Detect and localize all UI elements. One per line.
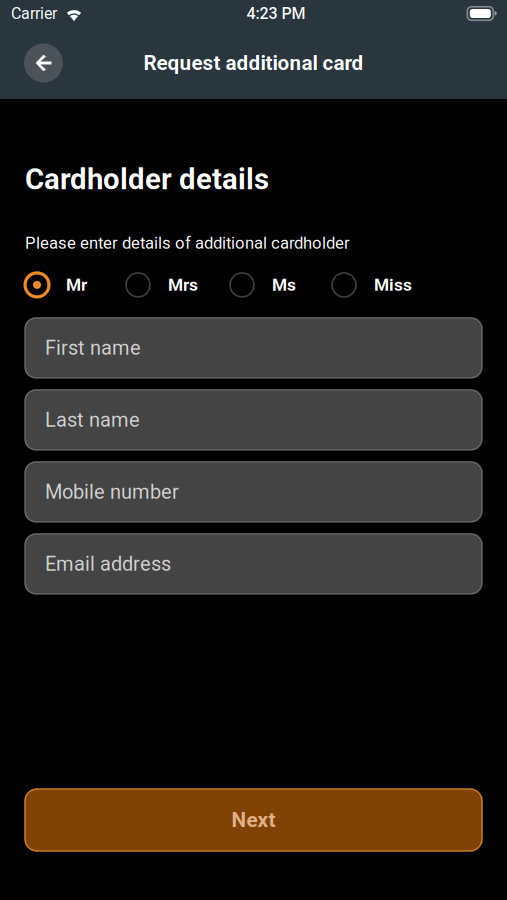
staticText: Please enter details of additional cardh…: [25, 233, 350, 253]
staticText: Email address: [45, 552, 171, 576]
staticText: Cardholder details: [25, 162, 269, 196]
staticText: Next: [231, 808, 275, 832]
staticText: Mr: [66, 275, 87, 295]
staticText: First name: [45, 336, 141, 360]
staticText: Carrier: [11, 4, 57, 23]
staticText: Ms: [272, 275, 296, 295]
staticText: Request additional card: [143, 51, 363, 75]
button[interactable]: Ms: [230, 273, 296, 297]
button[interactable]: Next: [25, 789, 482, 851]
button[interactable]: Last name: [25, 390, 482, 450]
staticText: 4:23 PM: [246, 4, 305, 23]
staticText: Mrs: [168, 275, 198, 295]
button[interactable]: Miss: [332, 273, 412, 297]
staticText: Miss: [374, 275, 412, 295]
button[interactable]: Mr: [25, 273, 87, 297]
button[interactable]: Back: [24, 43, 63, 82]
button[interactable]: Mobile number: [25, 462, 482, 522]
button[interactable]: First name: [25, 318, 482, 378]
staticText: Mobile number: [45, 480, 179, 504]
staticText: Last name: [45, 408, 140, 432]
button[interactable]: Email address: [25, 534, 482, 594]
button[interactable]: Mrs: [126, 273, 198, 297]
